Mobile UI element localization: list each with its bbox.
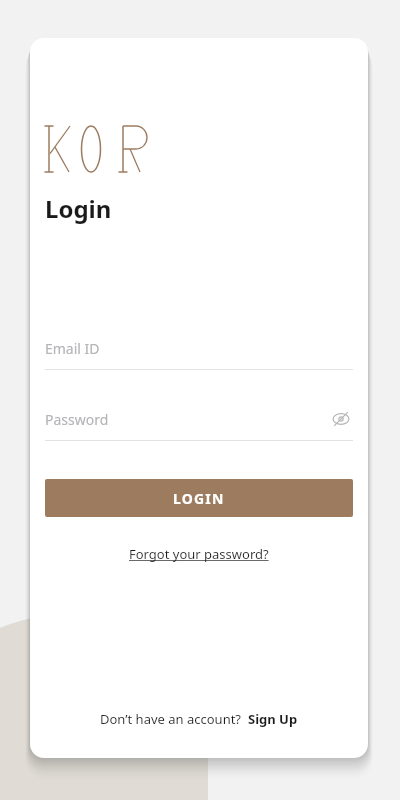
button[interactable]: Password <box>45 410 329 429</box>
button[interactable]: Email ID <box>45 335 353 370</box>
staticText: Password <box>45 410 109 429</box>
staticText: Sign Up <box>248 710 298 728</box>
staticText: Forgot your password? <box>129 545 269 563</box>
button[interactable]: Show password <box>329 407 353 431</box>
button[interactable]: Sign Up <box>248 710 298 728</box>
staticText: LOGIN <box>173 489 225 508</box>
staticText: Login <box>45 192 112 225</box>
button[interactable]: LOGIN <box>45 479 353 517</box>
staticText: Email ID <box>45 339 100 358</box>
button[interactable]: Forgot your password? <box>121 541 277 567</box>
staticText: Don’t have an account? <box>100 710 241 728</box>
